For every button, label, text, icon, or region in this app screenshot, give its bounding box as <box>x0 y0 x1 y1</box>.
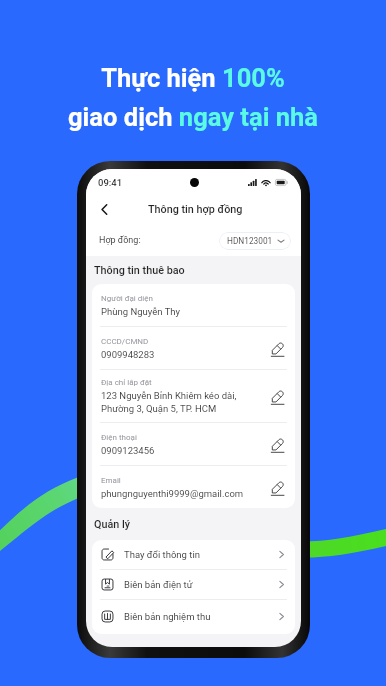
staticText: 0909123456 <box>101 445 155 456</box>
staticText: 123 Nguyễn Bỉnh Khiêm kéo dài, Phường 3,… <box>101 390 237 415</box>
staticText: HDN123001 <box>227 236 273 246</box>
button[interactable]: Back <box>92 197 116 221</box>
button[interactable]: Edit Địa chỉ lắp đặt <box>267 386 287 406</box>
button[interactable]: Thay đổi thông tin <box>92 540 295 569</box>
button[interactable]: Edit Điện thoại <box>267 434 287 454</box>
staticText: Thực hiện 100% <box>101 63 285 93</box>
staticText: Hợp đồng: <box>99 235 141 246</box>
staticText: Địa chỉ lắp đặt <box>101 378 152 387</box>
staticText: Thay đổi thông tin <box>124 549 200 560</box>
staticText: phungnguyenthi9999@gmail.com <box>101 488 244 499</box>
button[interactable]: Edit Email <box>267 477 287 497</box>
staticText: CCCD/CMND <box>101 337 149 346</box>
staticText: Người đại diện <box>101 294 153 303</box>
staticText: Điện thoại <box>101 433 137 442</box>
staticText: Thông tin thuê bao <box>94 264 185 277</box>
button[interactable]: HDN123001 <box>219 232 291 250</box>
staticText: giao dịch ngay tại nhà <box>68 102 318 132</box>
staticText: Phùng Nguyễn Thy <box>101 306 181 317</box>
button[interactable]: Biên bản nghiệm thu <box>92 599 295 634</box>
staticText: Thông tin hợp đồng <box>148 203 243 216</box>
button[interactable]: Biên bản điện tử <box>92 569 295 599</box>
staticText: Quản lý <box>94 518 131 531</box>
staticText: 0909948283 <box>101 349 155 360</box>
staticText: 09:41 <box>98 177 123 188</box>
staticText: Email <box>101 476 121 485</box>
button[interactable]: Edit CCCD/CMND <box>267 338 287 358</box>
staticText: Biên bản điện tử <box>124 579 193 590</box>
staticText: Biên bản nghiệm thu <box>124 611 211 622</box>
